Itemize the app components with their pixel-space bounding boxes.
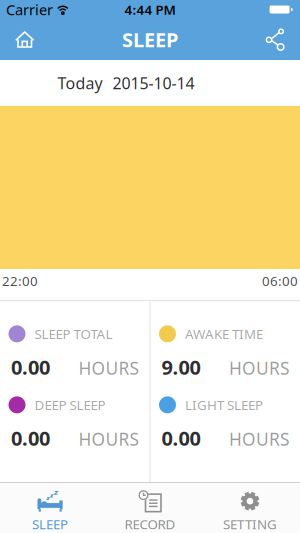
staticText: HOURS — [78, 356, 139, 379]
staticText: 4:44 PM — [124, 1, 175, 18]
staticText: 22:00 — [2, 272, 38, 290]
button[interactable]: SETTING — [200, 483, 300, 533]
staticText: 9.00 — [161, 354, 200, 380]
staticText: SETTING — [223, 515, 277, 533]
staticText: 2015-10-14 — [112, 72, 194, 94]
staticText: AWAKE TIME — [185, 325, 263, 343]
staticText: HOURS — [229, 427, 290, 450]
staticText: 0.00 — [11, 354, 50, 380]
staticText: 06:00 — [262, 272, 298, 290]
staticText: SLEEP — [32, 515, 68, 533]
button[interactable]: RECORD — [100, 483, 200, 533]
staticText: RECORD — [124, 515, 175, 533]
staticText: SLEEP TOTAL — [34, 325, 112, 343]
staticText: HOURS — [78, 427, 139, 450]
staticText: 0.00 — [11, 425, 50, 451]
staticText: DEEP SLEEP — [34, 396, 105, 414]
staticText: LIGHT SLEEP — [185, 396, 263, 414]
staticText: SLEEP — [122, 26, 178, 53]
staticText: Today — [57, 72, 102, 94]
button[interactable]: Home — [0, 21, 34, 58]
staticText: Carrier — [6, 0, 53, 19]
button[interactable]: SLEEP — [0, 483, 100, 533]
staticText: HOURS — [229, 356, 290, 379]
button[interactable]: Share — [264, 19, 300, 60]
staticText: 0.00 — [161, 425, 200, 451]
